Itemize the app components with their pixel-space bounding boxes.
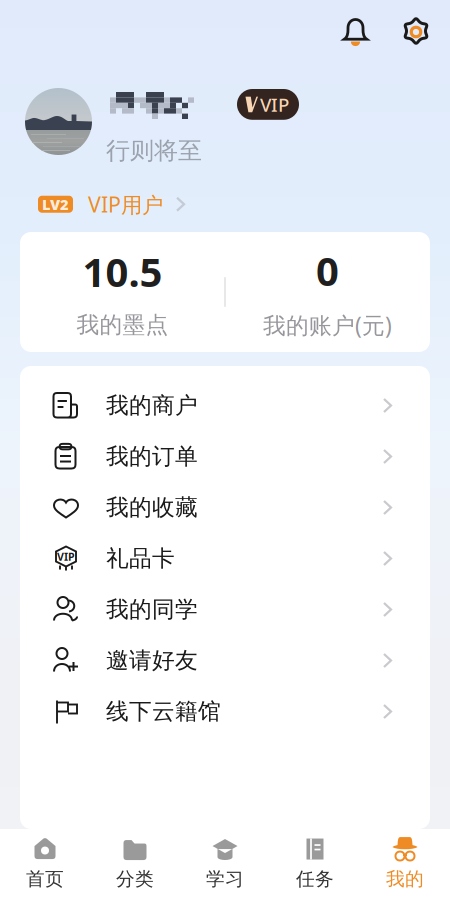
button[interactable]: 分类 bbox=[90, 826, 180, 900]
button[interactable]: 我的收藏 bbox=[20, 482, 430, 533]
staticText: VIP用户 bbox=[88, 190, 163, 218]
button[interactable]: LV2 bbox=[38, 190, 185, 218]
staticText: 我的同学 bbox=[106, 596, 198, 623]
staticText: 我的账户(元) bbox=[263, 310, 392, 340]
staticText: 0 bbox=[316, 244, 339, 297]
staticText: 首页 bbox=[26, 867, 64, 890]
staticText: 10.5 bbox=[82, 245, 162, 298]
staticText: VIP bbox=[57, 549, 75, 564]
button[interactable]: 我的订单 bbox=[20, 431, 430, 482]
staticText: 学习 bbox=[206, 867, 244, 890]
staticText: 线下云籍馆 bbox=[106, 698, 221, 725]
staticText: 分类 bbox=[116, 867, 154, 890]
button[interactable]: 任务 bbox=[270, 826, 360, 900]
button[interactable]: 我的商户 bbox=[20, 380, 430, 431]
button[interactable]: 邀请好友 bbox=[20, 635, 430, 686]
button[interactable]: VIP bbox=[237, 89, 299, 120]
button[interactable]: 学习 bbox=[180, 826, 270, 900]
staticText: 任务 bbox=[296, 867, 334, 890]
button[interactable]: 我的 bbox=[360, 826, 450, 900]
button[interactable]: 我的同学 bbox=[20, 584, 430, 635]
staticText: LV2 bbox=[42, 194, 69, 214]
staticText: 我的收藏 bbox=[106, 494, 198, 521]
button[interactable]: 首页 bbox=[0, 826, 90, 900]
button[interactable]: Settings bbox=[402, 17, 430, 47]
staticText: 我的商户 bbox=[106, 392, 198, 419]
staticText: 礼品卡 bbox=[106, 545, 175, 572]
staticText: 行则将至 bbox=[106, 136, 202, 165]
button[interactable]: 线下云籍馆 bbox=[20, 686, 430, 737]
staticText: 我的 bbox=[386, 867, 424, 890]
button[interactable]: VIP bbox=[20, 533, 430, 584]
button[interactable]: Notifications bbox=[343, 18, 368, 48]
staticText: 我的墨点 bbox=[76, 311, 168, 339]
staticText: 我的订单 bbox=[106, 443, 198, 470]
staticText: 邀请好友 bbox=[106, 647, 198, 674]
staticText: VIP bbox=[260, 92, 289, 117]
